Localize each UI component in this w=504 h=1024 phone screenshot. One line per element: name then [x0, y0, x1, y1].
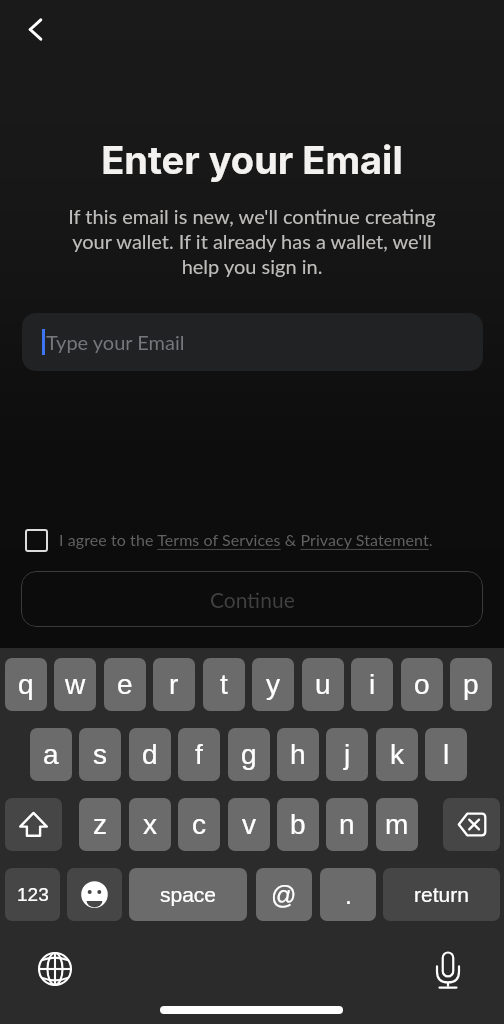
button[interactable]: p [450, 658, 492, 711]
button[interactable]: f [178, 728, 220, 781]
staticText: Continue [210, 587, 295, 612]
staticText: space [160, 883, 217, 906]
staticText: a [43, 739, 59, 770]
button[interactable]: y [252, 658, 294, 711]
button[interactable]: q [5, 658, 47, 711]
staticText: Enter your Email [0, 137, 504, 183]
button[interactable]: t [203, 658, 245, 711]
button[interactable]: h [277, 728, 319, 781]
button[interactable]: g [228, 728, 270, 781]
button[interactable]: a [30, 728, 72, 781]
button[interactable]: Emoji [67, 868, 122, 921]
staticText: m [385, 809, 409, 840]
button[interactable]: m [376, 798, 418, 851]
button[interactable]: w [54, 658, 96, 711]
staticText: p [463, 669, 479, 700]
staticText: y [266, 669, 280, 700]
button[interactable]: o [401, 658, 443, 711]
button[interactable]: @ [256, 868, 312, 921]
button[interactable]: e [104, 658, 146, 711]
staticText: I agree to the Terms of Services & Priva… [59, 530, 433, 549]
button[interactable]: 123 [5, 868, 60, 921]
button[interactable]: b [277, 798, 319, 851]
staticText: r [169, 669, 179, 700]
button[interactable]: I agree to the Terms of Services & Priva… [19, 521, 427, 558]
button[interactable]: space [129, 868, 247, 921]
staticText: l [443, 739, 450, 770]
button[interactable]: n [326, 798, 368, 851]
button[interactable]: s [79, 728, 121, 781]
staticText: h [290, 739, 306, 770]
button[interactable]: Continue [21, 571, 483, 627]
button[interactable]: c [178, 798, 220, 851]
button[interactable]: Change keyboard language [35, 949, 75, 989]
staticText: d [142, 739, 158, 770]
button[interactable]: Dictation [428, 949, 468, 989]
button[interactable]: d [129, 728, 171, 781]
staticText: x [143, 809, 157, 840]
staticText: f [195, 739, 203, 770]
staticText: w [65, 669, 86, 700]
staticText: z [93, 809, 107, 840]
staticText: i [369, 669, 376, 700]
button[interactable]: return [383, 868, 500, 921]
button[interactable]: Type your Email [22, 313, 483, 371]
staticText: . [345, 881, 352, 909]
staticText: o [414, 669, 430, 700]
staticText: If this email is new, we'll continue cre… [0, 204, 504, 278]
button[interactable]: Backspace [443, 798, 500, 851]
staticText: g [241, 739, 257, 770]
button[interactable]: k [376, 728, 418, 781]
staticText: @ [271, 881, 297, 909]
button[interactable]: l [425, 728, 467, 781]
staticText: t [220, 669, 228, 700]
staticText: e [117, 669, 133, 700]
staticText: k [390, 739, 404, 770]
button[interactable]: v [228, 798, 270, 851]
staticText: 123 [17, 884, 49, 905]
staticText: c [192, 809, 206, 840]
staticText: Type your Email [46, 330, 185, 354]
staticText: u [315, 669, 331, 700]
button[interactable]: i [351, 658, 393, 711]
staticText: q [18, 669, 34, 700]
staticText: v [242, 809, 256, 840]
button[interactable]: x [129, 798, 171, 851]
staticText: return [414, 883, 469, 906]
staticText: n [339, 809, 355, 840]
button[interactable]: Shift [5, 798, 62, 851]
staticText: j [344, 739, 351, 770]
button[interactable]: r [153, 658, 195, 711]
button[interactable]: u [302, 658, 344, 711]
staticText: b [290, 809, 306, 840]
staticText: s [93, 739, 107, 770]
button[interactable]: . [320, 868, 376, 921]
button[interactable]: j [326, 728, 368, 781]
button[interactable]: Back [13, 8, 57, 52]
button[interactable]: z [79, 798, 121, 851]
